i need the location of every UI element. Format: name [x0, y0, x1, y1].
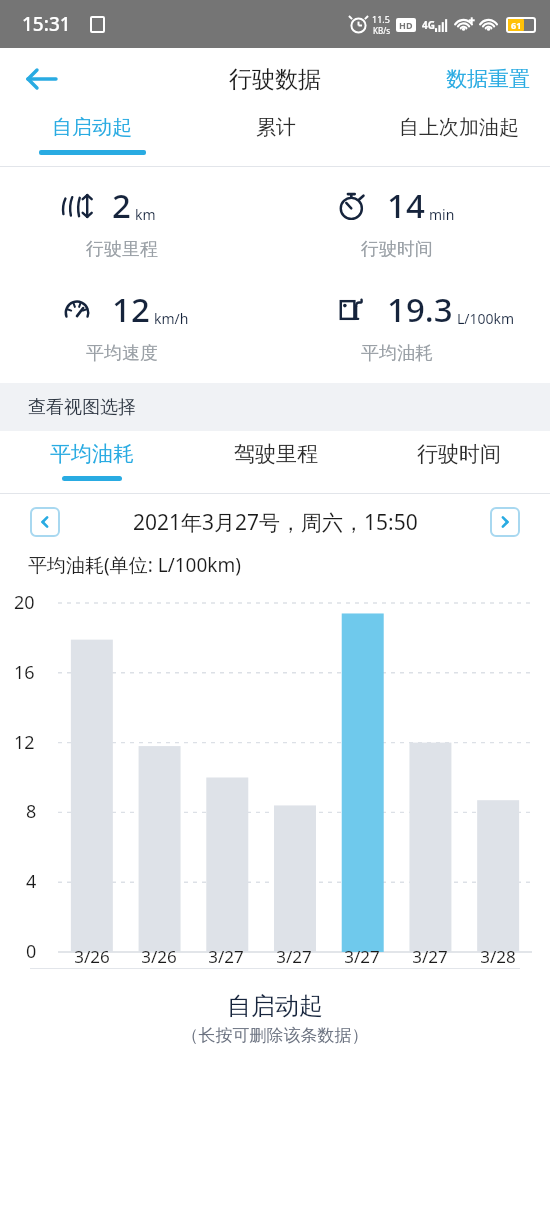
staticText: 3/27 — [412, 945, 448, 968]
staticText: 累计 — [256, 115, 296, 140]
button[interactable]: 自上次加油起 — [367, 110, 550, 166]
button[interactable]: 驾驶里程 — [184, 431, 367, 493]
button[interactable]: 平均油耗 — [0, 431, 184, 493]
staticText: 驾驶里程 — [234, 441, 318, 467]
staticText: 2 — [112, 183, 131, 228]
button[interactable]: Next — [490, 507, 520, 537]
staticText: min — [429, 205, 455, 224]
staticText: 查看视图选择 — [28, 396, 136, 419]
staticText: 0 — [26, 939, 37, 964]
staticText: 3/28 — [480, 945, 516, 968]
staticText: （长按可删除该条数据） — [0, 1025, 550, 1046]
staticText: 3/26 — [141, 945, 177, 968]
staticText: L/100km — [457, 309, 515, 328]
button[interactable]: 累计 — [184, 110, 367, 166]
staticText: 平均油耗(单位: L/100km) — [28, 552, 241, 578]
staticText: 12 — [112, 287, 150, 332]
button[interactable]: Back — [14, 52, 68, 106]
staticText: 15:31 — [22, 11, 71, 37]
staticText: 4G — [422, 18, 435, 32]
button[interactable]: 数据重置 — [446, 66, 550, 92]
staticText: km — [135, 205, 156, 224]
staticText: 行驶里程 — [86, 238, 158, 261]
button[interactable]: 自启动起 — [0, 110, 184, 166]
staticText: 16 — [14, 660, 35, 685]
staticText: 3/27 — [344, 945, 380, 968]
button[interactable]: 行驶时间 — [367, 431, 550, 493]
staticText: 自启动起 — [0, 991, 550, 1021]
staticText: 2021年3月27号，周六，15:50 — [133, 508, 418, 537]
staticText: 14 — [387, 183, 425, 228]
button[interactable]: Previous — [30, 507, 60, 537]
staticText: HD — [399, 19, 413, 31]
staticText: 行驶数据 — [229, 65, 321, 94]
staticText: 3/27 — [276, 945, 312, 968]
staticText: 8 — [26, 799, 37, 824]
staticText: 行驶时间 — [417, 441, 501, 467]
staticText: 19.3 — [387, 287, 453, 332]
staticText: 61 — [511, 19, 522, 31]
staticText: 平均油耗 — [361, 342, 433, 365]
staticText: 4 — [26, 869, 37, 894]
staticText: 自上次加油起 — [399, 115, 519, 140]
staticText: 自启动起 — [52, 115, 132, 140]
staticText: 3/26 — [74, 945, 110, 968]
staticText: KB/s — [373, 25, 390, 36]
staticText: 行驶时间 — [361, 238, 433, 261]
staticText: 11.5 — [372, 13, 390, 25]
staticText: 20 — [14, 590, 35, 615]
staticText: 平均速度 — [86, 342, 158, 365]
staticText: 3/27 — [208, 945, 244, 968]
staticText: 平均油耗 — [50, 441, 134, 467]
staticText: 12 — [14, 730, 35, 755]
staticText: km/h — [154, 309, 189, 328]
